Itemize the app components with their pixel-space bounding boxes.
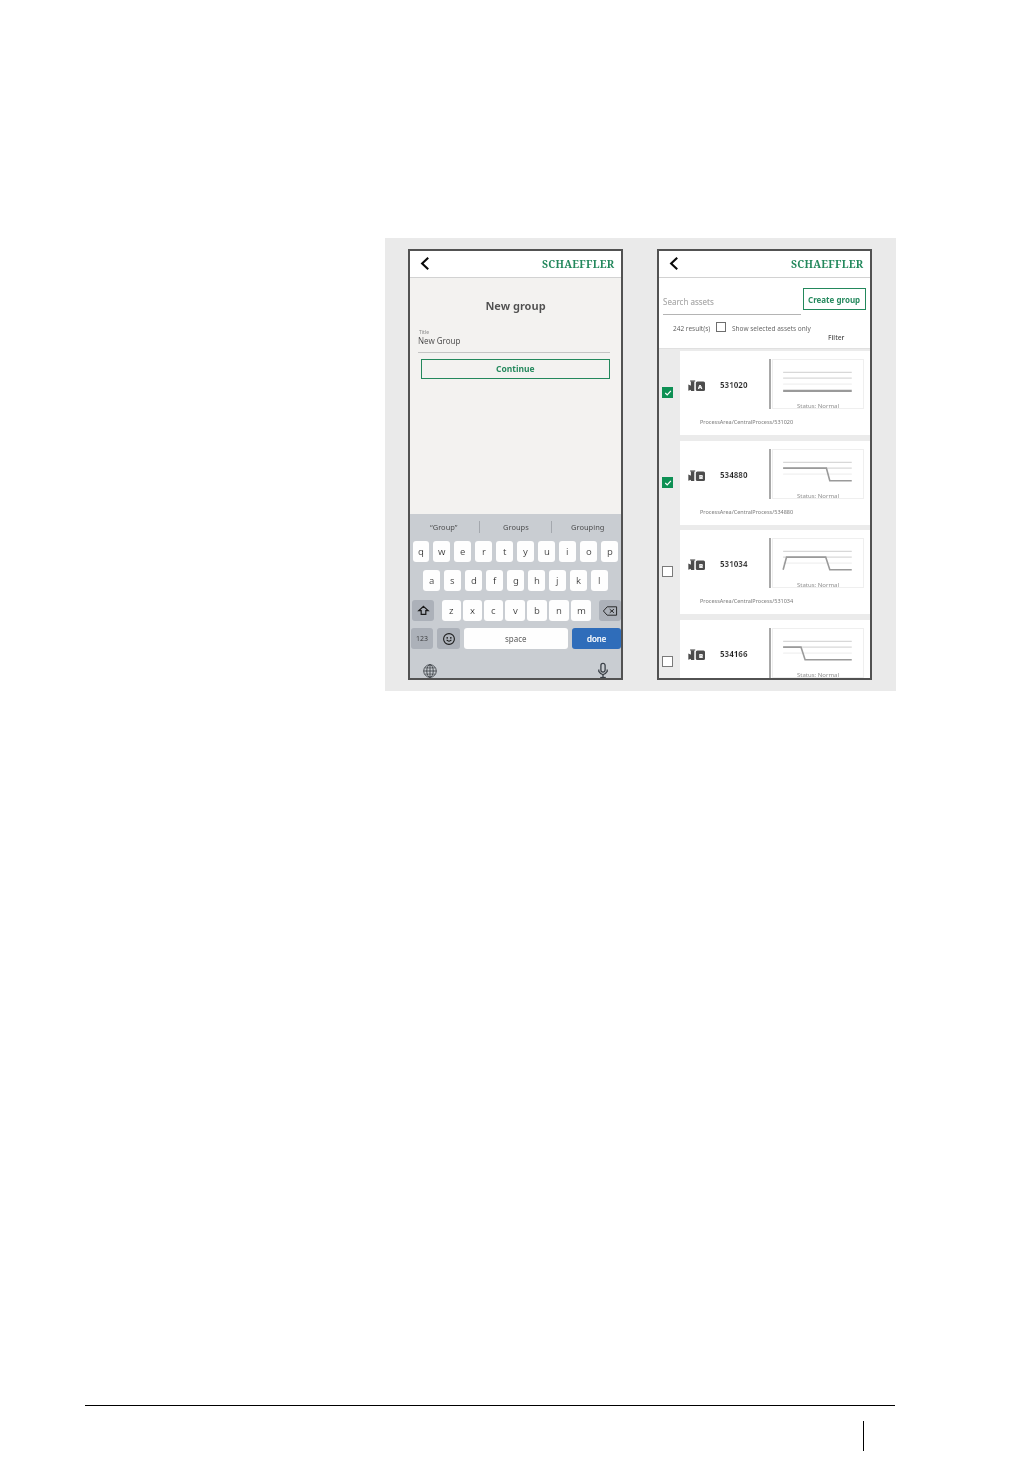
staticText: k (576, 574, 582, 587)
staticText: d (471, 574, 477, 587)
button[interactable]: Back (664, 254, 682, 272)
staticText: o (586, 545, 592, 558)
staticText: s (450, 574, 455, 587)
staticText: Show selected assets only (732, 324, 811, 333)
staticText: Search assets (663, 296, 714, 307)
staticText: SCHAEFFLER (542, 257, 615, 271)
staticText: ProcessArea/CentralProcess/531020 (700, 418, 794, 425)
staticText: m (577, 604, 586, 617)
button[interactable]: Dictate (598, 663, 608, 678)
staticText: n (556, 604, 562, 617)
staticText: p (607, 545, 613, 558)
staticText: space (505, 633, 527, 644)
staticText: A (698, 383, 703, 391)
staticText: x (470, 604, 476, 617)
button[interactable]: b (527, 600, 547, 621)
button[interactable]: Shift (412, 600, 434, 621)
button[interactable]: Create group (803, 288, 866, 310)
staticText: z (449, 604, 454, 617)
staticText: c (491, 604, 496, 617)
staticText: Groups (503, 522, 529, 532)
staticText: r (482, 545, 486, 558)
button[interactable]: “Group” (408, 514, 479, 539)
button[interactable]: Back (415, 254, 433, 272)
button[interactable]: m (571, 600, 591, 621)
button[interactable]: h (528, 570, 545, 591)
button[interactable]: z (442, 600, 461, 621)
button[interactable]: k (570, 570, 587, 591)
staticText: Status: Normal (797, 492, 839, 500)
staticText: Grouping (571, 522, 605, 532)
button[interactable]: o (580, 541, 597, 562)
staticText: 531020 (720, 379, 748, 390)
staticText: Status: Normal (797, 402, 839, 410)
button[interactable]: a (423, 570, 440, 591)
button[interactable]: Emoji (437, 628, 460, 649)
button[interactable]: q (413, 541, 429, 562)
staticText: 534880 (720, 469, 748, 480)
staticText: SCHAEFFLER (791, 257, 864, 271)
button[interactable]: Filter (827, 332, 846, 343)
button[interactable]: Groups (480, 514, 551, 539)
button[interactable]: u (538, 541, 555, 562)
staticText: Status: Normal (797, 671, 839, 678)
staticText: j (556, 574, 559, 587)
button[interactable]: Select asset 531020 (657, 349, 872, 440)
button[interactable]: g (507, 570, 524, 591)
staticText: l (598, 574, 601, 587)
staticText: B (699, 562, 703, 570)
button[interactable]: space (464, 628, 568, 649)
button[interactable]: v (505, 600, 525, 621)
button[interactable]: s (444, 570, 461, 591)
button[interactable]: n (549, 600, 569, 621)
button[interactable]: Backspace (599, 600, 621, 621)
button[interactable]: i (559, 541, 576, 562)
button[interactable]: c (484, 600, 503, 621)
button[interactable]: f (486, 570, 503, 591)
button[interactable]: Grouping (552, 514, 623, 539)
button[interactable]: t (496, 541, 513, 562)
staticText: Title (419, 329, 429, 336)
button[interactable]: Select asset 534880 (657, 439, 872, 530)
staticText: B (699, 473, 703, 481)
staticText: 534166 (720, 648, 748, 659)
button[interactable]: y (517, 541, 534, 562)
button[interactable]: Language (423, 664, 437, 678)
button[interactable]: Select asset 531020 (662, 387, 673, 398)
staticText: ProcessArea/CentralProcess/531034 (700, 597, 794, 604)
staticText: t (503, 545, 507, 558)
button[interactable]: done (572, 628, 621, 649)
button[interactable]: Show selected assets only (716, 322, 726, 332)
button[interactable]: Select asset 531034 (662, 566, 673, 577)
staticText: B (699, 652, 703, 660)
staticText: i (566, 545, 569, 558)
staticText: 123 (416, 634, 429, 644)
button[interactable]: Select asset 534880 (662, 477, 673, 488)
staticText: New group (408, 298, 623, 313)
button[interactable]: l (591, 570, 608, 591)
button[interactable]: Select asset 531034 (657, 528, 872, 619)
staticText: ProcessArea/CentralProcess/534880 (700, 508, 794, 515)
staticText: b (534, 604, 540, 617)
staticText: “Group” (430, 522, 458, 532)
staticText: Create group (808, 294, 861, 305)
button[interactable]: Search assets (663, 289, 800, 314)
staticText: Filter (828, 333, 845, 342)
button[interactable]: 123 (411, 628, 433, 649)
staticText: v (513, 604, 518, 617)
staticText: y (523, 545, 528, 558)
button[interactable]: Select asset 534166 (662, 656, 673, 667)
staticText: g (513, 574, 519, 587)
button[interactable]: w (433, 541, 450, 562)
button[interactable]: j (549, 570, 566, 591)
button[interactable]: Continue (421, 359, 610, 379)
button[interactable]: e (454, 541, 471, 562)
staticText: q (418, 545, 424, 558)
button[interactable]: d (465, 570, 482, 591)
button[interactable]: r (475, 541, 492, 562)
button[interactable]: x (463, 600, 482, 621)
button[interactable]: p (601, 541, 618, 562)
button[interactable]: Select asset 534166 (657, 618, 872, 678)
staticText: Continue (496, 363, 535, 375)
staticText: f (493, 574, 497, 587)
